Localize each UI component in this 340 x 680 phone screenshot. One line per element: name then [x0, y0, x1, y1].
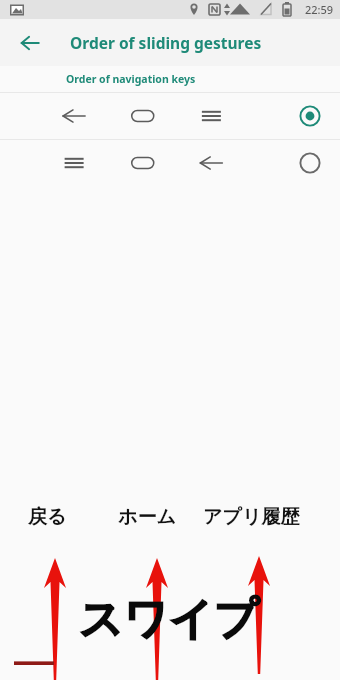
button[interactable]: Select — [280, 140, 340, 186]
staticText: Order of sliding gestures — [70, 32, 262, 53]
button[interactable]: Select — [0, 140, 340, 186]
staticText: 戻る — [28, 505, 67, 529]
button[interactable]: Back — [12, 25, 48, 61]
staticText: アプリ履歴 — [203, 505, 300, 529]
staticText: スワイプ — [78, 592, 259, 647]
staticText: ホーム — [118, 505, 176, 529]
button[interactable]: Selected — [0, 93, 340, 139]
staticText: 22:59 — [305, 2, 334, 17]
staticText: Order of navigation keys — [66, 72, 196, 86]
button[interactable]: Selected — [280, 93, 340, 139]
